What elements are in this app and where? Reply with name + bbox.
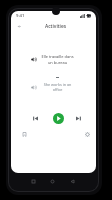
button[interactable]: Settings <box>82 129 92 139</box>
staticText: Elle travaille dans un bureau <box>39 54 76 65</box>
button[interactable]: Previous <box>30 113 40 123</box>
button[interactable]: Back <box>66 175 78 187</box>
button[interactable]: Recent apps <box>27 175 39 187</box>
button[interactable]: Bookmark <box>19 129 29 139</box>
staticText: Activities <box>45 23 67 30</box>
button[interactable]: Play <box>53 113 64 124</box>
staticText: She works in an office <box>39 82 76 92</box>
button[interactable]: Home <box>46 175 58 187</box>
button[interactable]: Back <box>14 21 25 32</box>
button[interactable]: Play audio <box>29 83 38 92</box>
staticText: 9:41 <box>16 13 25 19</box>
button[interactable]: Play audio <box>29 55 38 64</box>
button[interactable]: Next <box>73 113 83 123</box>
